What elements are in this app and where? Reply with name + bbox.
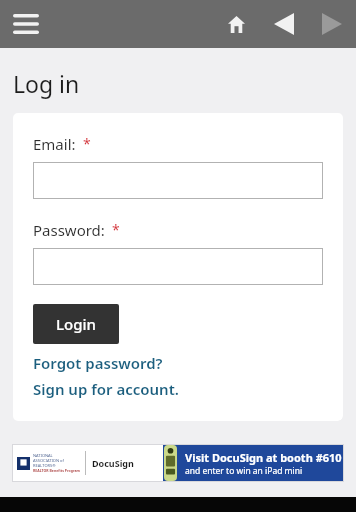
button[interactable]: [33, 162, 323, 199]
button[interactable]: Back: [264, 4, 304, 44]
staticText: ASSOCIATION of: [33, 458, 64, 463]
staticText: NATIONAL: [33, 453, 53, 458]
button[interactable]: Visit DocuSign at booth #610 ad: [12, 444, 344, 482]
staticText: Visit DocuSign at booth #610: [185, 450, 342, 465]
staticText: *: [83, 134, 91, 153]
staticText: Login: [56, 314, 96, 334]
staticText: REALTOR Benefits Program: [33, 468, 80, 473]
button[interactable]: Forgot password?: [33, 353, 163, 373]
staticText: REALTORS®: [33, 463, 56, 468]
staticText: Forgot password?: [33, 353, 163, 373]
staticText: Email:: [33, 134, 76, 154]
button[interactable]: Forward: [312, 4, 352, 44]
button[interactable]: Menu: [6, 4, 46, 44]
button[interactable]: Home: [216, 4, 256, 44]
staticText: Sign up for account.: [33, 379, 179, 399]
staticText: and enter to win an iPad mini: [185, 465, 303, 477]
staticText: *: [112, 220, 120, 239]
staticText: DocuSign: [92, 457, 134, 469]
button[interactable]: Sign up for account.: [33, 379, 179, 399]
staticText: Log in: [13, 68, 80, 99]
button[interactable]: Login: [33, 304, 119, 344]
staticText: Password:: [33, 220, 105, 240]
button[interactable]: [33, 248, 323, 285]
